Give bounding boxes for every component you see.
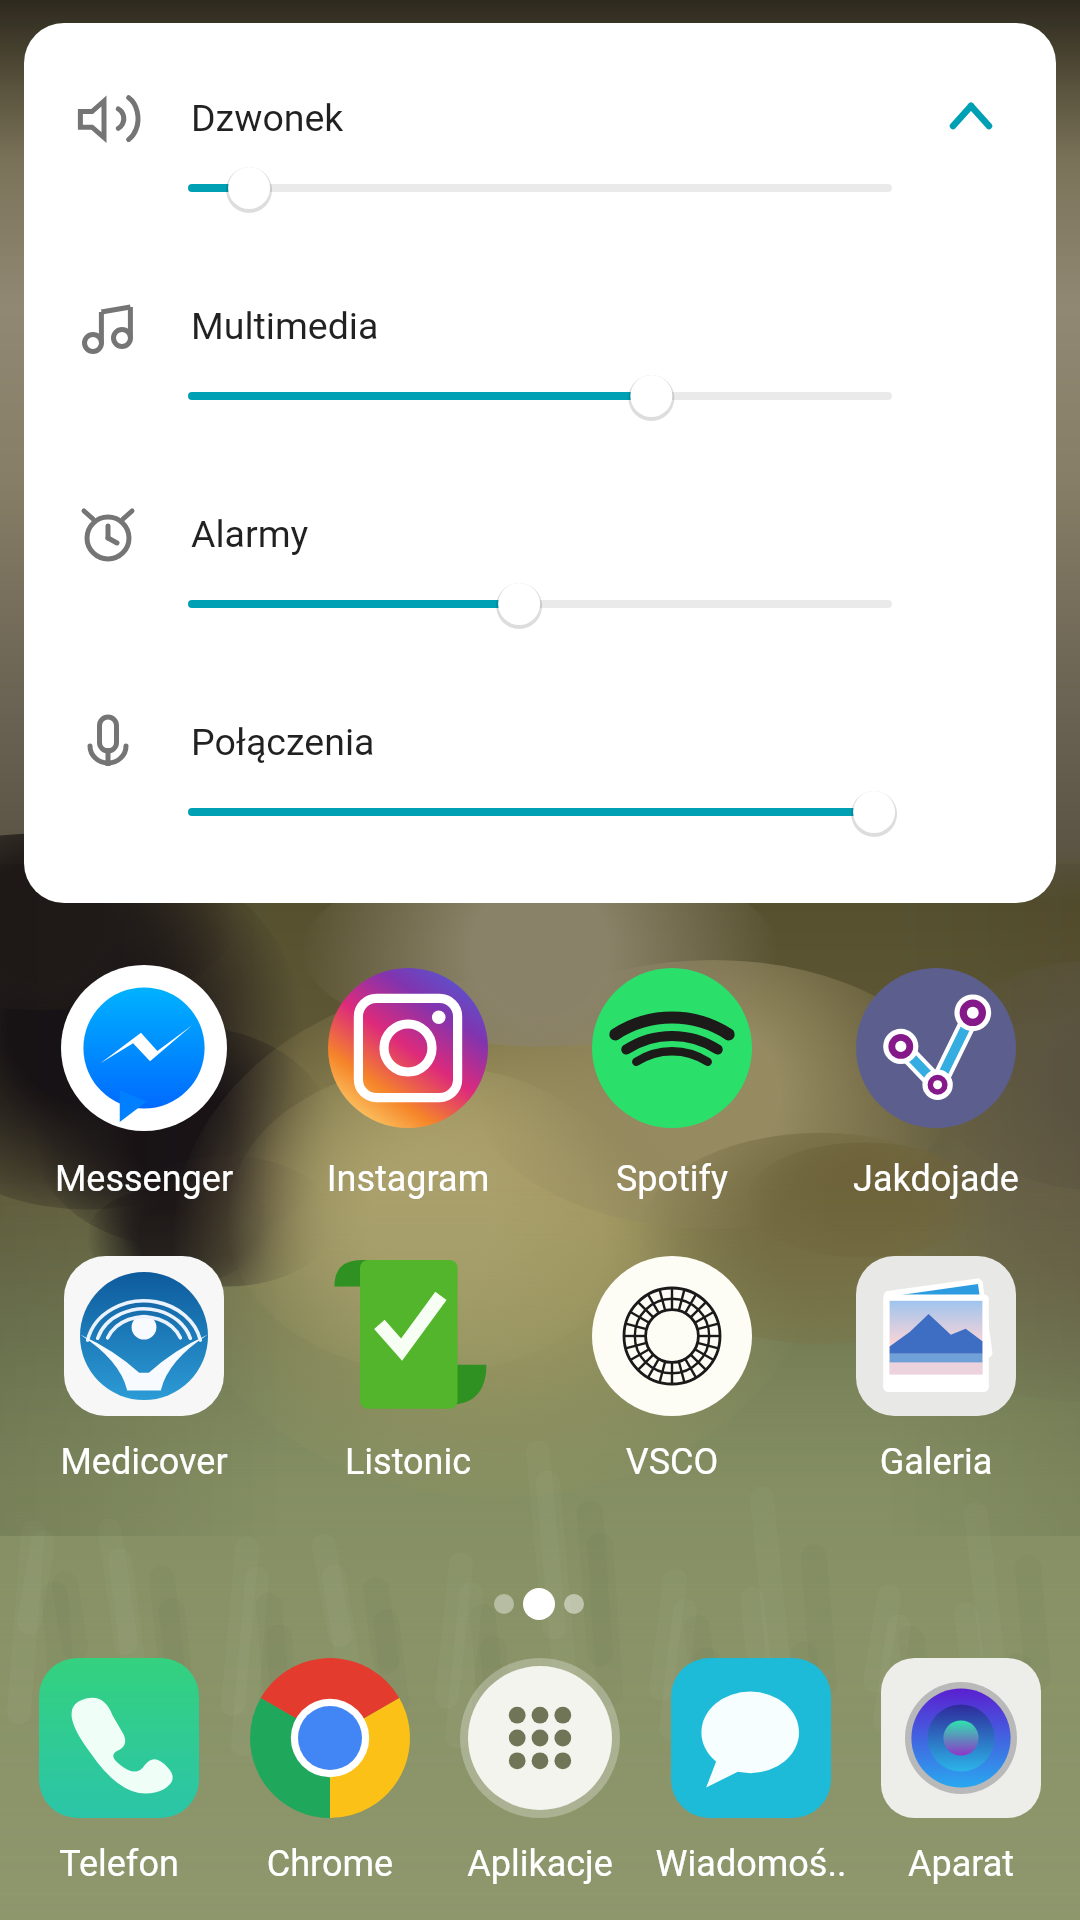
staticText: Medicover bbox=[12, 1441, 276, 1483]
staticText: Dzwonek bbox=[191, 96, 344, 140]
staticText: Alarmy bbox=[191, 512, 309, 556]
button[interactable]: VSCO bbox=[540, 1240, 804, 1495]
button[interactable]: Galeria bbox=[804, 1240, 1068, 1495]
staticText: Listonic bbox=[276, 1441, 540, 1483]
staticText: Messenger bbox=[12, 1158, 276, 1200]
staticText: Spotify bbox=[540, 1158, 804, 1200]
button[interactable]: Wiadomoś.. bbox=[619, 1642, 883, 1897]
button[interactable]: Aparat bbox=[829, 1642, 1080, 1897]
staticText: Chrome bbox=[198, 1843, 462, 1885]
staticText: Telefon bbox=[0, 1843, 251, 1885]
staticText: Wiadomoś.. bbox=[619, 1843, 883, 1885]
staticText: Aparat bbox=[829, 1843, 1080, 1885]
staticText: Jakdojade bbox=[804, 1158, 1068, 1200]
button[interactable]: Messenger bbox=[12, 952, 276, 1212]
button[interactable]: Listonic bbox=[276, 1240, 540, 1495]
button[interactable]: Telefon bbox=[0, 1642, 251, 1897]
button[interactable]: Chrome bbox=[198, 1642, 462, 1897]
button[interactable]: Spotify bbox=[540, 952, 804, 1212]
button[interactable] bbox=[24, 697, 1056, 787]
button[interactable]: Aplikacje bbox=[408, 1642, 672, 1897]
button[interactable] bbox=[24, 489, 1056, 579]
button[interactable]: Jakdojade bbox=[804, 952, 1068, 1212]
button[interactable]: Instagram bbox=[276, 952, 540, 1212]
button[interactable] bbox=[24, 281, 1056, 371]
staticText: Instagram bbox=[276, 1158, 540, 1200]
staticText: Aplikacje bbox=[408, 1843, 672, 1885]
staticText: Połączenia bbox=[191, 720, 375, 764]
staticText: Multimedia bbox=[191, 304, 379, 348]
staticText: VSCO bbox=[540, 1441, 804, 1483]
button[interactable] bbox=[24, 73, 1056, 163]
button[interactable]: Medicover bbox=[12, 1240, 276, 1495]
staticText: Galeria bbox=[804, 1441, 1068, 1483]
